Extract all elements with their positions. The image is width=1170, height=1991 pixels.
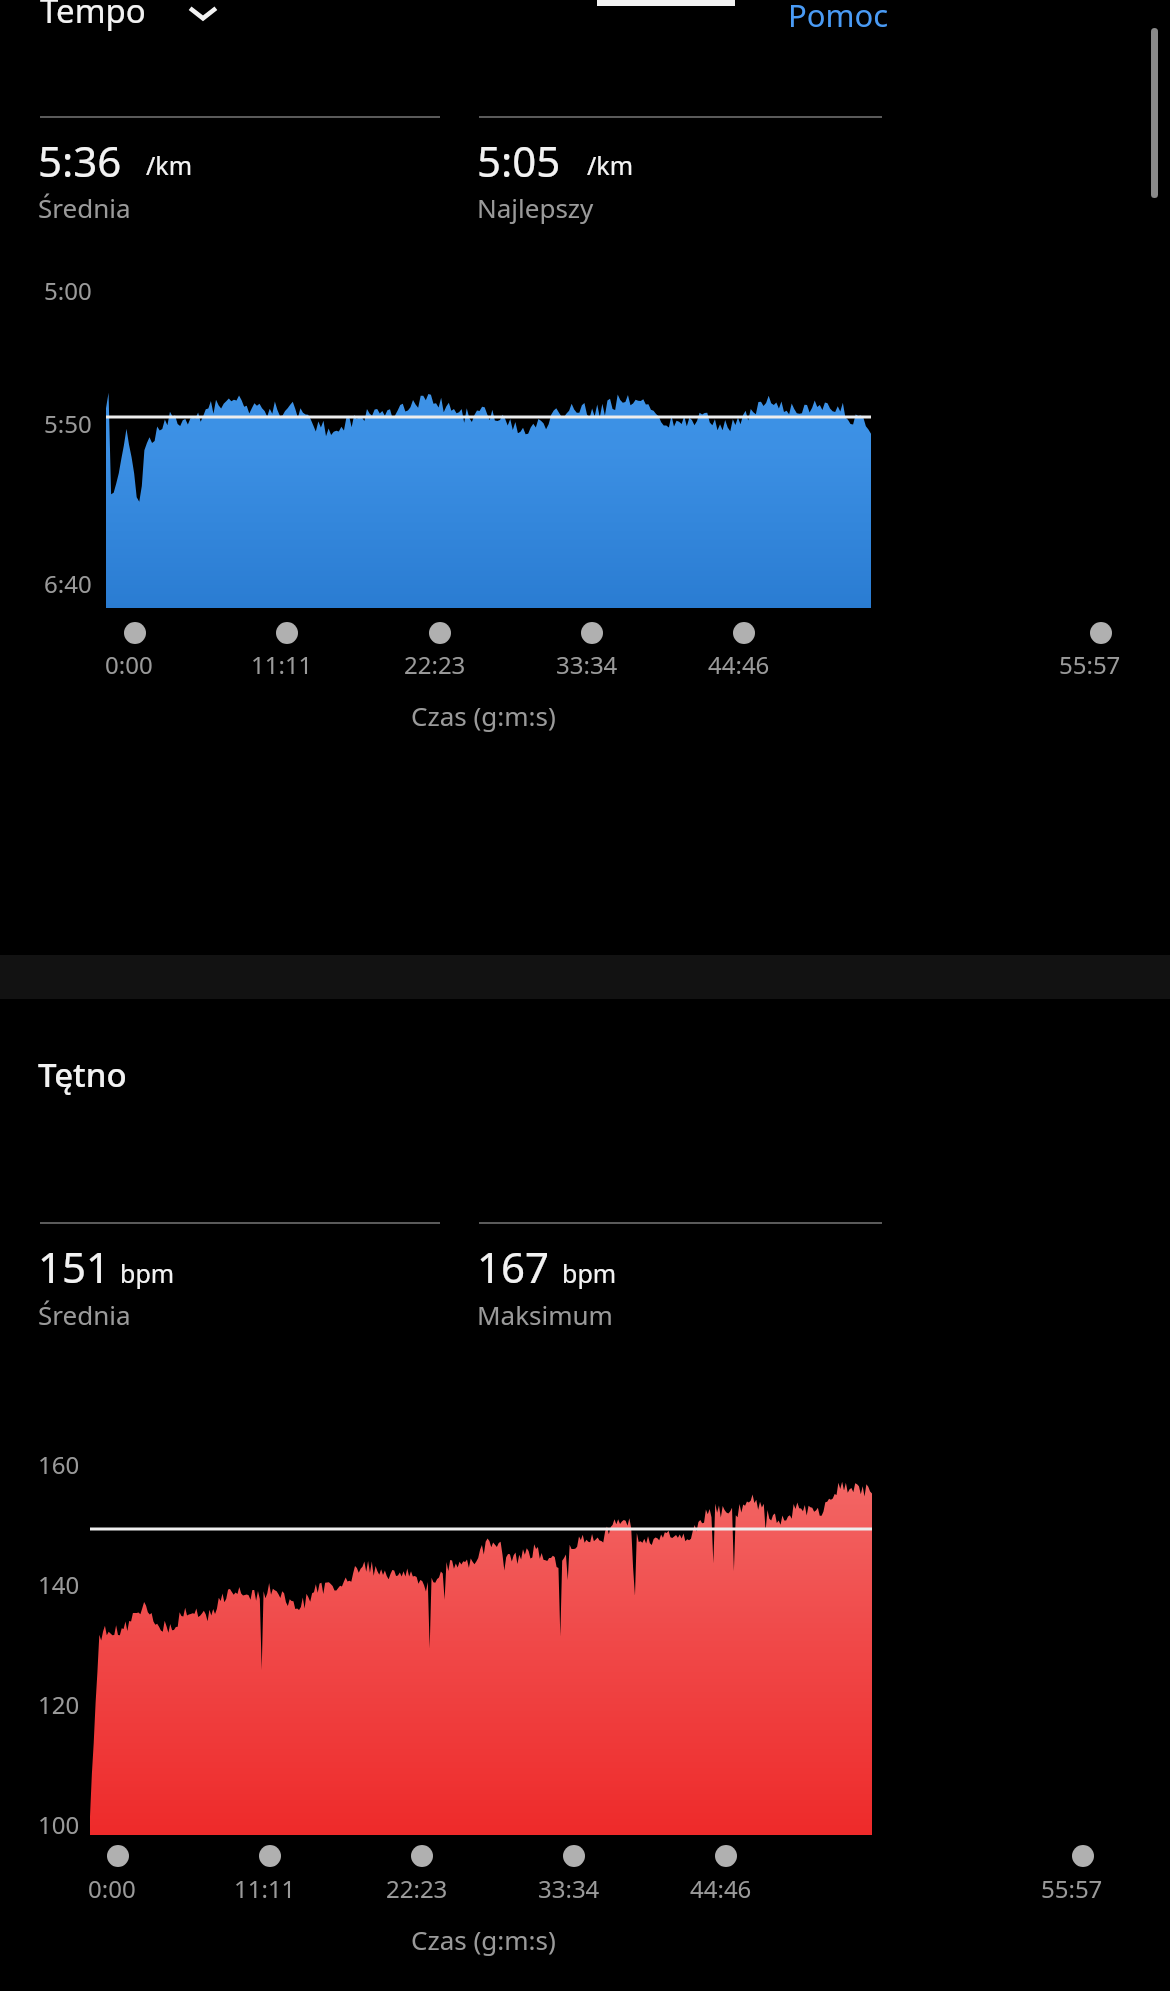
staticText: 33:34 [538,1872,600,1905]
button[interactable]: Tempo [34,0,244,44]
staticText: Średnia [38,1297,131,1332]
staticText: Tętno [38,1052,127,1097]
staticText: 44:46 [690,1872,752,1905]
staticText: Tempo [40,0,146,33]
staticText: Średnia [38,190,131,225]
staticText: 33:34 [556,648,618,681]
staticText: 151 [38,1238,111,1295]
staticText: 5:05 [477,132,561,189]
button[interactable]: Pomoc [780,0,900,44]
staticText: 167 [477,1238,550,1295]
staticText: 55:57 [1059,648,1121,681]
staticText: 120 [38,1688,80,1721]
staticText: Czas (g:m:s) [411,698,556,733]
staticText: 140 [38,1568,80,1601]
staticText: /km [146,148,193,182]
staticText: 0:00 [88,1872,136,1905]
staticText: bpm [120,1256,175,1290]
staticText: /km [587,148,634,182]
staticText: 11:11 [251,648,313,681]
staticText: 6:40 [44,567,92,600]
staticText: 22:23 [404,648,466,681]
staticText: 5:50 [44,407,92,440]
staticText: Maksimum [477,1297,613,1332]
staticText: Najlepszy [477,190,594,225]
staticText: Pomoc [788,0,889,36]
staticText: 11:11 [234,1872,296,1905]
staticText: Czas (g:m:s) [411,1922,556,1957]
staticText: 22:23 [386,1872,448,1905]
staticText: 160 [38,1448,80,1481]
staticText: 5:36 [38,132,122,189]
staticText: 5:00 [44,274,92,307]
staticText: 44:46 [708,648,770,681]
staticText: 0:00 [105,648,153,681]
staticText: 55:57 [1041,1872,1103,1905]
staticText: 100 [38,1808,80,1841]
staticText: bpm [562,1256,617,1290]
